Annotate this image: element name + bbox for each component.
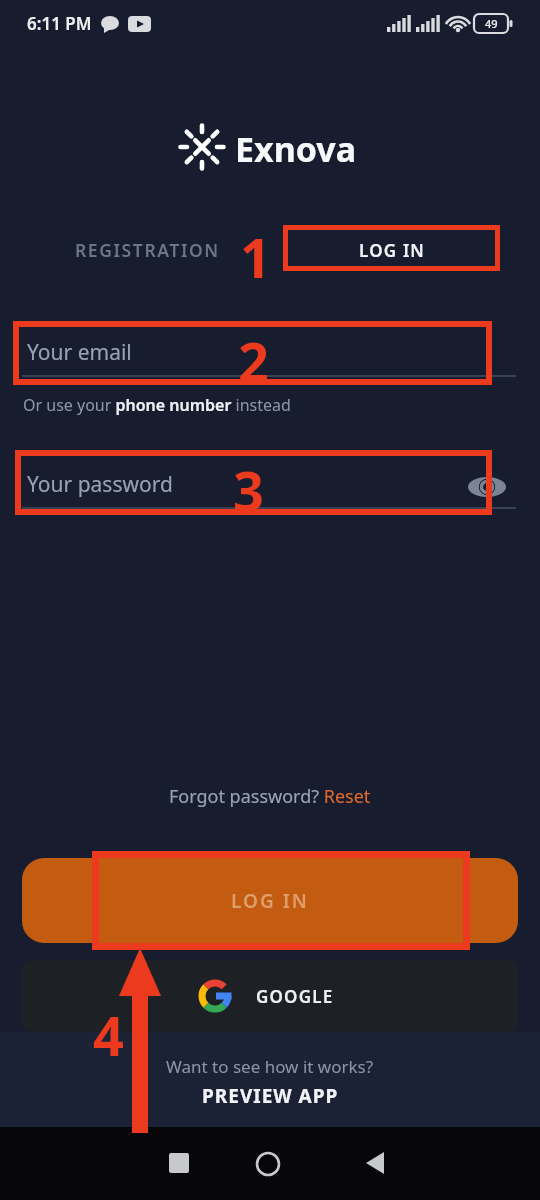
button[interactable] xyxy=(255,1151,281,1177)
button[interactable] xyxy=(169,1153,189,1173)
staticText: 2 xyxy=(238,324,269,382)
staticText: 4 xyxy=(93,998,124,1056)
staticText: Forgot password? Reset xyxy=(169,784,371,809)
staticText: 1 xyxy=(240,220,271,278)
staticText: 3 xyxy=(233,453,264,511)
staticText: Or use your phone number instead xyxy=(23,394,291,416)
button[interactable]: REGISTRATION xyxy=(62,232,232,268)
staticText: LOG IN xyxy=(359,239,426,262)
staticText: Exnova xyxy=(235,126,357,168)
button[interactable] xyxy=(364,1152,387,1174)
staticText: Want to see how it works? xyxy=(166,1055,374,1078)
button[interactable]: LOG IN xyxy=(22,858,518,943)
button[interactable]: Your password xyxy=(22,464,516,510)
staticText: Your password xyxy=(27,470,173,499)
staticText: GOOGLE xyxy=(256,985,334,1008)
button[interactable]: LOG IN xyxy=(300,232,485,268)
staticText: PREVIEW APP xyxy=(202,1083,339,1109)
button[interactable]: Your email xyxy=(22,332,516,378)
staticText: 49 xyxy=(485,16,498,31)
staticText: 6:11 PM xyxy=(27,12,92,35)
button[interactable]: PREVIEW APP xyxy=(0,1082,540,1110)
staticText: Your email xyxy=(27,338,132,367)
button[interactable]: Forgot password? Reset xyxy=(0,782,540,810)
button[interactable]: GOOGLE xyxy=(22,960,518,1032)
staticText: REGISTRATION xyxy=(75,238,220,262)
staticText: LOG IN xyxy=(231,888,309,914)
button[interactable]: Or use your phone number instead xyxy=(23,392,291,418)
